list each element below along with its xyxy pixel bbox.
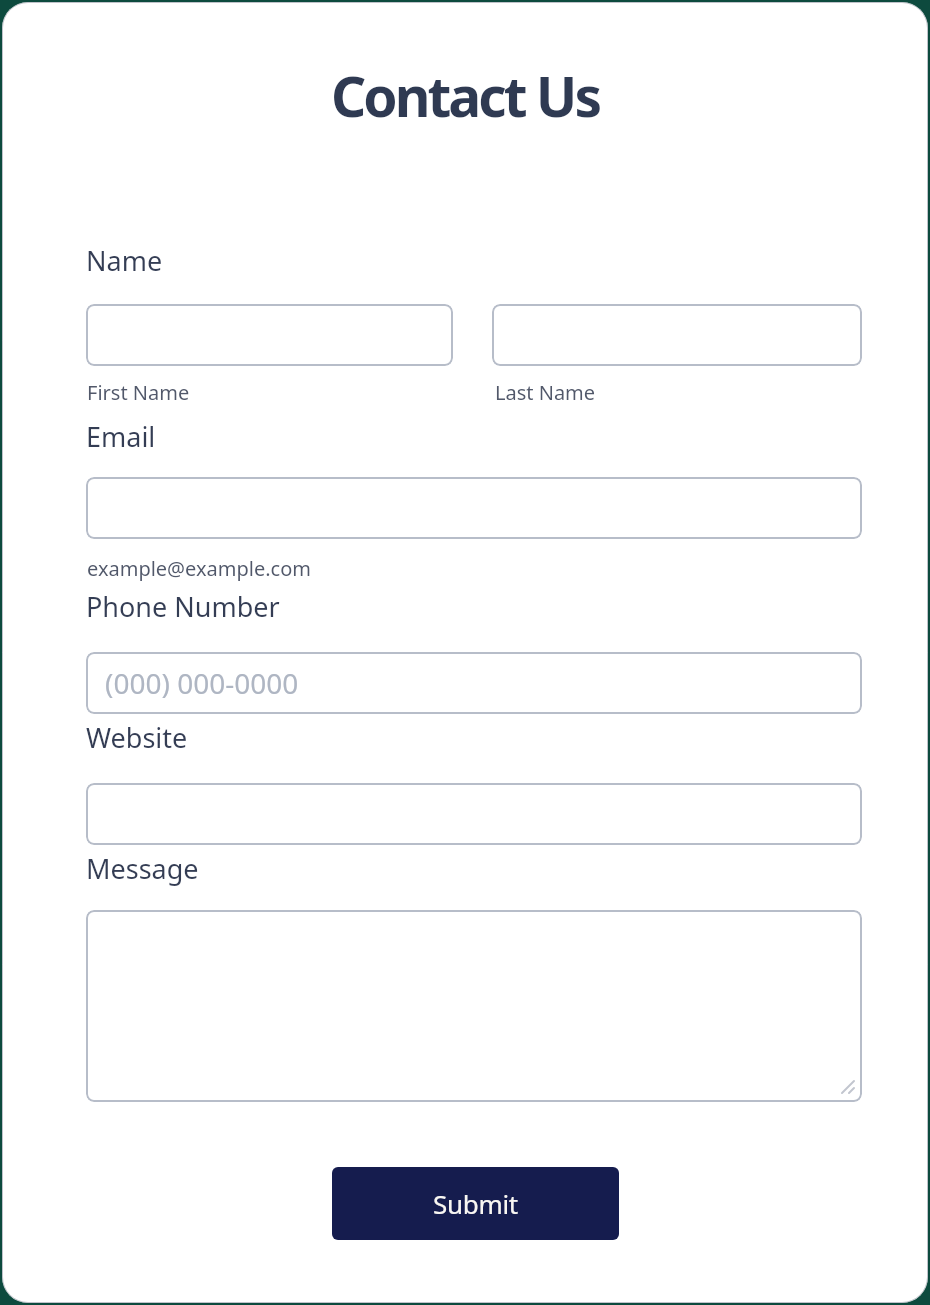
staticText: (000) 000-0000 <box>105 664 299 702</box>
staticText: example@example.com <box>87 555 311 582</box>
staticText: Phone Number <box>86 588 280 625</box>
staticText: Email <box>86 418 156 455</box>
staticText: Website <box>86 719 188 756</box>
button[interactable]: (000) 000-0000 <box>86 652 862 714</box>
button[interactable] <box>86 477 862 539</box>
button[interactable] <box>492 304 862 366</box>
button[interactable] <box>86 304 453 366</box>
button[interactable] <box>86 783 862 845</box>
staticText: Message <box>86 850 199 887</box>
staticText: Submit <box>433 1186 518 1221</box>
staticText: Name <box>86 242 163 279</box>
button[interactable]: Submit <box>332 1167 619 1240</box>
staticText: Last Name <box>495 379 596 406</box>
staticText: First Name <box>87 379 190 406</box>
button[interactable] <box>86 910 862 1102</box>
staticText: Contact Us <box>331 58 599 133</box>
